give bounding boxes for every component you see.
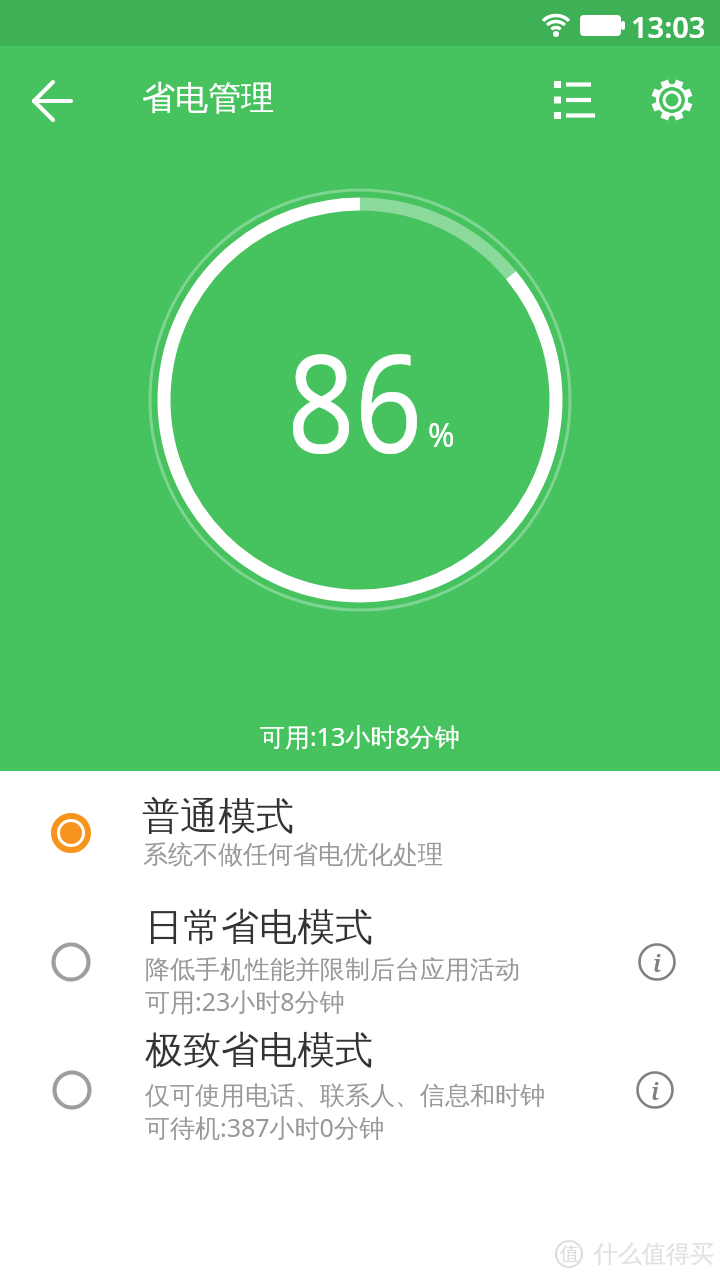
staticText: 13:03 (631, 7, 706, 46)
staticText: 日常省电模式 (145, 903, 373, 951)
staticText: 系统不做任何省电优化处理 (143, 839, 443, 870)
staticText: 86 (287, 308, 423, 493)
button[interactable]: 极致省电模式 (0, 1022, 720, 1154)
button[interactable] (548, 76, 600, 124)
staticText: 什么值得买 (594, 1239, 714, 1269)
staticText: i (651, 1074, 660, 1107)
button[interactable]: i (638, 943, 676, 981)
button[interactable]: i (636, 1071, 674, 1109)
staticText: 降低手机性能并限制后台应用活动 (145, 954, 520, 985)
staticText: 可待机:387小时0分钟 (145, 1110, 384, 1144)
button[interactable]: 日常省电模式 (0, 890, 720, 1022)
button[interactable] (646, 74, 698, 126)
staticText: i (653, 946, 662, 979)
button[interactable]: 普通模式 (0, 778, 720, 882)
staticText: 值 (560, 1242, 579, 1266)
staticText: 可用:13小时8分钟 (260, 719, 460, 753)
staticText: % (428, 413, 455, 457)
staticText: 极致省电模式 (145, 1026, 373, 1074)
button[interactable] (18, 78, 86, 124)
staticText: 可用:23小时8分钟 (145, 984, 345, 1018)
staticText: 仅可使用电话、联系人、信息和时钟 (145, 1080, 545, 1111)
staticText: 省电管理 (142, 77, 274, 119)
staticText: 普通模式 (142, 792, 294, 840)
